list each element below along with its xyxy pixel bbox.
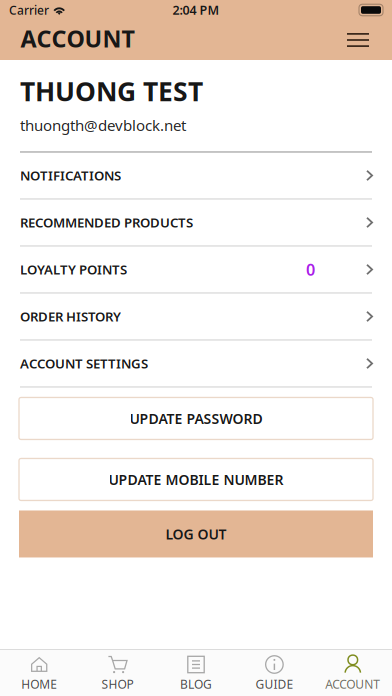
staticText: LOG OUT bbox=[165, 524, 226, 543]
staticText: LOYALTY POINTS bbox=[20, 260, 127, 278]
button[interactable]: NOTIFICATIONS bbox=[0, 152, 392, 199]
staticText: ACCOUNT bbox=[21, 23, 135, 54]
button[interactable]: ORDER HISTORY bbox=[0, 293, 392, 340]
button[interactable]: BLOG bbox=[157, 650, 235, 696]
button[interactable]: RECOMMENDED PRODUCTS bbox=[0, 199, 392, 246]
button[interactable]: GUIDE bbox=[235, 650, 314, 696]
staticText: UPDATE MOBILE NUMBER bbox=[108, 470, 283, 489]
button[interactable]: ACCOUNT bbox=[314, 650, 392, 696]
button[interactable]: Menu bbox=[336, 23, 380, 57]
button[interactable]: HOME bbox=[0, 650, 78, 696]
staticText: BLOG bbox=[180, 676, 212, 692]
button[interactable]: UPDATE MOBILE NUMBER bbox=[19, 458, 373, 500]
staticText: GUIDE bbox=[255, 676, 293, 692]
staticText: ACCOUNT SETTINGS bbox=[20, 354, 148, 372]
button[interactable]: LOG OUT bbox=[19, 510, 373, 557]
button[interactable]: SHOP bbox=[78, 650, 157, 696]
staticText: RECOMMENDED PRODUCTS bbox=[20, 213, 193, 231]
staticText: Carrier bbox=[9, 2, 49, 18]
staticText: THUONG TEST bbox=[20, 73, 203, 109]
staticText: HOME bbox=[21, 676, 57, 692]
button[interactable]: LOYALTY POINTS bbox=[0, 246, 392, 293]
staticText: ORDER HISTORY bbox=[20, 307, 121, 325]
staticText: UPDATE PASSWORD bbox=[129, 409, 262, 428]
staticText: SHOP bbox=[102, 676, 134, 692]
staticText: ACCOUNT bbox=[325, 676, 380, 692]
staticText: NOTIFICATIONS bbox=[20, 166, 121, 184]
staticText: thuongth@devblock.net bbox=[20, 115, 186, 135]
staticText: 2:04 PM bbox=[172, 1, 219, 19]
staticText: 0 bbox=[306, 258, 315, 281]
button[interactable]: ACCOUNT SETTINGS bbox=[0, 340, 392, 387]
button[interactable]: UPDATE PASSWORD bbox=[19, 397, 373, 439]
